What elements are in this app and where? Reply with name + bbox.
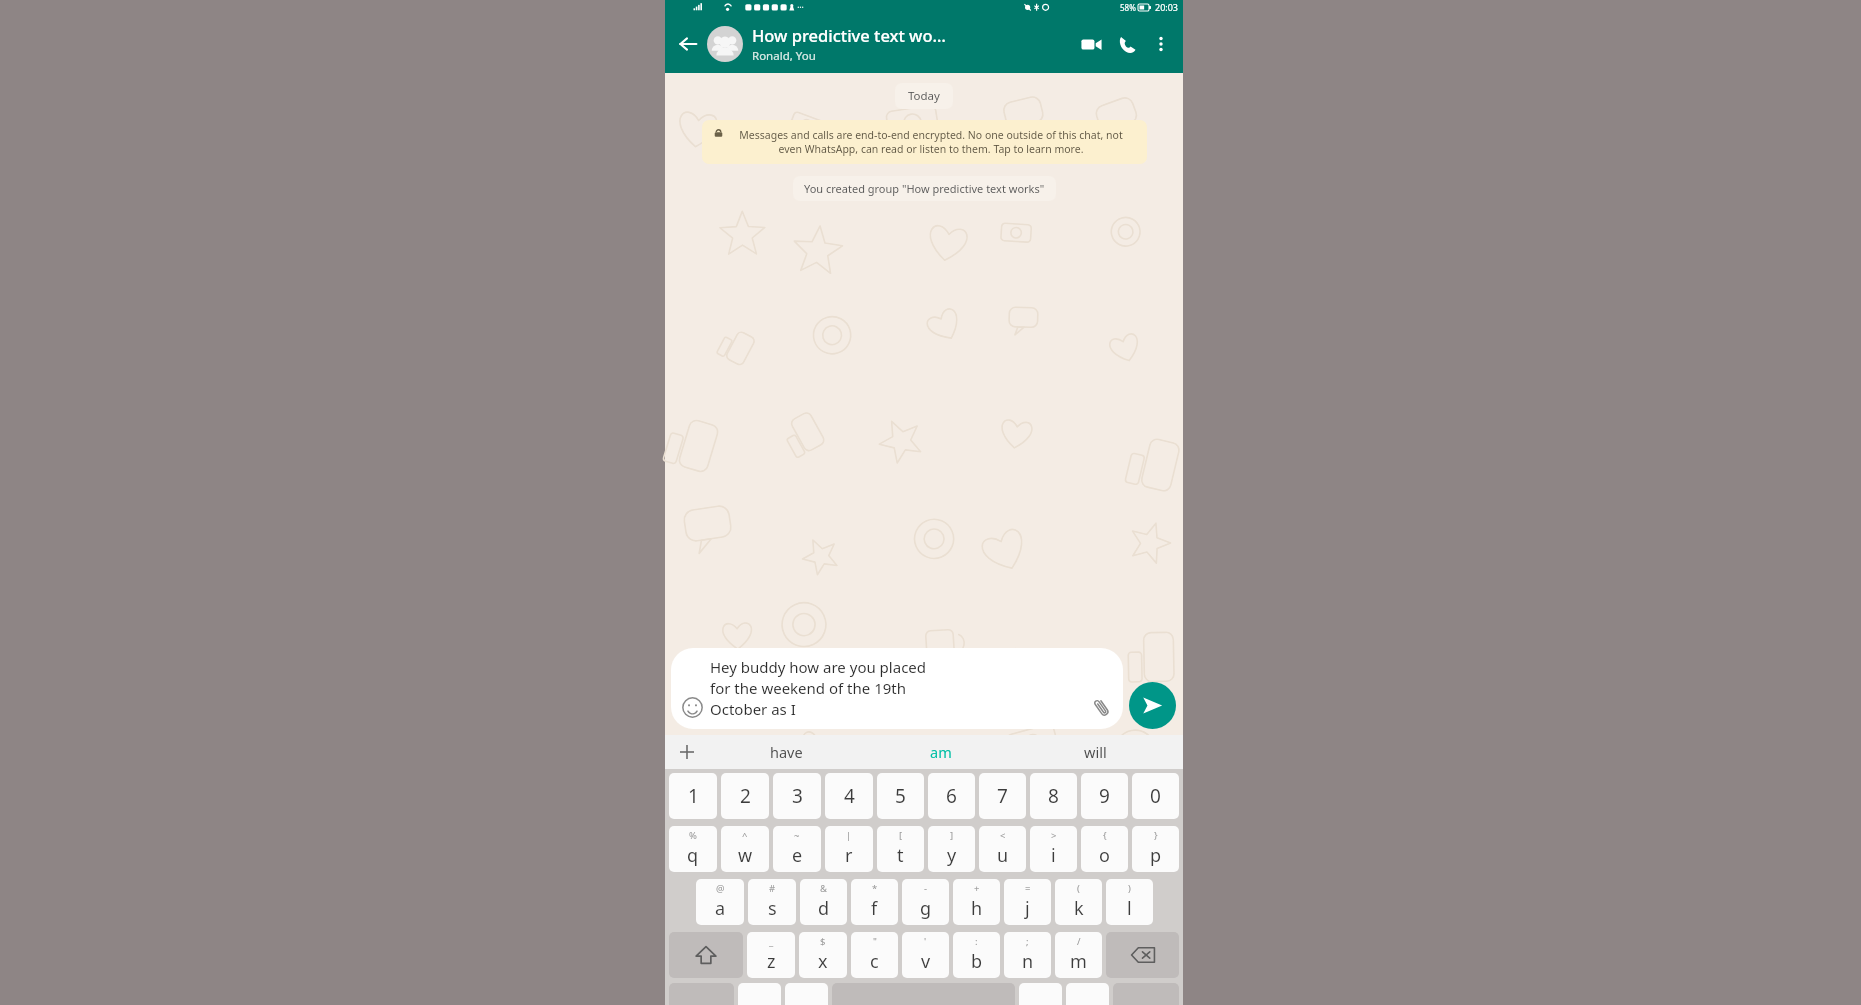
button[interactable]: - xyxy=(902,879,949,925)
button[interactable]: * xyxy=(851,879,898,925)
button[interactable]: 7 xyxy=(979,773,1026,819)
staticText: s xyxy=(768,896,777,921)
staticText: r xyxy=(845,843,853,868)
staticText: l xyxy=(1127,896,1132,921)
staticText: 4 xyxy=(844,783,855,809)
staticText: p xyxy=(1150,843,1162,868)
staticText: " xyxy=(873,935,877,948)
button[interactable]: Send xyxy=(1129,682,1176,729)
staticText: 1 xyxy=(688,783,699,809)
button[interactable]: ' xyxy=(902,932,949,978)
button[interactable]: $ xyxy=(799,932,847,978)
staticText: q xyxy=(687,843,699,868)
button[interactable]: 6 xyxy=(928,773,975,819)
staticText: / xyxy=(1077,935,1081,948)
button[interactable]: have xyxy=(709,735,863,769)
button[interactable]: " xyxy=(851,932,898,978)
button[interactable]: @ xyxy=(696,879,744,925)
button[interactable]: 3 xyxy=(773,773,821,819)
staticText: a xyxy=(715,896,726,921)
button[interactable]: How predictive text wo… xyxy=(752,14,1073,73)
button[interactable]: Emoji xyxy=(680,695,705,720)
button[interactable]: } xyxy=(1132,826,1179,872)
button[interactable]: { xyxy=(1081,826,1128,872)
staticText: < xyxy=(1000,829,1006,842)
staticText: | xyxy=(846,829,852,842)
button[interactable]: > xyxy=(1030,826,1077,872)
button[interactable]: _ xyxy=(747,932,795,978)
button[interactable]: 5 xyxy=(877,773,924,819)
staticText: w xyxy=(738,843,753,868)
button[interactable]: [ xyxy=(877,826,924,872)
button[interactable]: More suggestions xyxy=(665,735,709,769)
button[interactable]: More options xyxy=(1145,28,1177,60)
button[interactable]: ) xyxy=(1106,879,1153,925)
staticText: o xyxy=(1099,843,1110,868)
button[interactable]: will xyxy=(1018,735,1173,769)
button[interactable]: 4 xyxy=(825,773,873,819)
button[interactable]: Attach xyxy=(1089,695,1114,720)
staticText: i xyxy=(1051,843,1056,868)
button[interactable]: | xyxy=(825,826,873,872)
staticText: j xyxy=(1025,896,1030,921)
staticText: e xyxy=(792,843,803,868)
button[interactable]: ^ xyxy=(721,826,769,872)
button[interactable]: Voice call xyxy=(1109,26,1145,62)
button[interactable]: Shift xyxy=(669,932,743,978)
staticText: 7 xyxy=(997,783,1008,809)
staticText: You created group "How predictive text w… xyxy=(804,181,1045,196)
staticText: v xyxy=(921,949,931,974)
staticText: d xyxy=(818,896,830,921)
button[interactable]: = xyxy=(1004,879,1051,925)
staticText: u xyxy=(997,843,1009,868)
button[interactable]: % xyxy=(669,826,717,872)
staticText: { xyxy=(1103,829,1107,842)
button[interactable]: Emoji xyxy=(671,648,1123,729)
staticText: c xyxy=(870,949,879,974)
button[interactable]: ] xyxy=(928,826,975,872)
button[interactable]: / xyxy=(1055,932,1102,978)
staticText: ] xyxy=(950,829,954,842)
staticText: [ xyxy=(899,829,903,842)
staticText: ~ xyxy=(794,829,800,842)
button[interactable]: ~ xyxy=(773,826,821,872)
button[interactable]: am xyxy=(863,735,1018,769)
button[interactable]: Video call xyxy=(1073,26,1109,62)
button[interactable]: 2 xyxy=(721,773,769,819)
button[interactable]: ; xyxy=(1004,932,1051,978)
staticText: ; xyxy=(1026,935,1029,948)
staticText: _ xyxy=(769,935,774,948)
staticText: } xyxy=(1154,829,1158,842)
button[interactable]: # xyxy=(748,879,796,925)
button[interactable]: < xyxy=(979,826,1026,872)
button[interactable]: 9 xyxy=(1081,773,1128,819)
button[interactable]: Today xyxy=(908,88,940,104)
staticText: Today xyxy=(908,88,940,104)
button[interactable]: Backspace xyxy=(1106,932,1179,978)
button[interactable]: 1 xyxy=(669,773,717,819)
button[interactable]: You created group "How predictive text w… xyxy=(804,181,1045,196)
button[interactable]: 8 xyxy=(1030,773,1077,819)
staticText: ^ xyxy=(742,829,748,842)
button[interactable]: Back xyxy=(671,27,705,61)
staticText: will xyxy=(1084,742,1107,762)
button[interactable] xyxy=(1019,983,1062,1005)
button[interactable] xyxy=(738,983,781,1005)
staticText: + xyxy=(974,882,980,895)
button[interactable]: + xyxy=(953,879,1000,925)
staticText: ) xyxy=(1128,882,1131,895)
button[interactable]: Messages and calls are end-to-end encryp… xyxy=(714,128,1135,156)
staticText: h xyxy=(971,896,983,921)
staticText: 3 xyxy=(792,783,803,809)
button[interactable]: : xyxy=(953,932,1000,978)
button[interactable]: ( xyxy=(1055,879,1102,925)
button[interactable] xyxy=(1066,983,1109,1005)
button[interactable]: & xyxy=(800,879,847,925)
staticText: ' xyxy=(924,935,927,948)
button[interactable] xyxy=(707,26,743,62)
button[interactable]: 0 xyxy=(1132,773,1179,819)
button[interactable] xyxy=(785,983,828,1005)
